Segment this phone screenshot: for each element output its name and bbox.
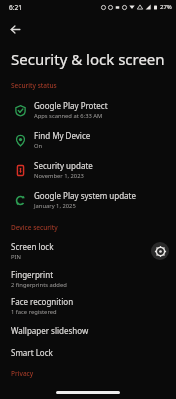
button[interactable]: Security update xyxy=(0,155,176,185)
staticText: 1 face registered xyxy=(11,308,57,316)
staticText: Find My Device xyxy=(34,130,91,141)
button[interactable]: Wallpaper slideshow xyxy=(0,319,176,341)
staticText: 6:21 xyxy=(9,3,22,12)
staticText: November 1, 2023 xyxy=(34,172,84,180)
staticText: Security status xyxy=(11,81,57,90)
staticText: Fingerprint xyxy=(11,269,54,280)
staticText: Google Play system update xyxy=(34,190,137,201)
staticText: Device security xyxy=(11,223,58,232)
button[interactable]: Fingerprint xyxy=(0,265,176,292)
staticText: Privacy xyxy=(11,369,34,378)
button[interactable]: Find My Device xyxy=(0,125,176,155)
staticText: Face recognition xyxy=(11,296,74,307)
staticText: 2 fingerprints added xyxy=(11,281,67,289)
staticText: On xyxy=(34,142,43,150)
button[interactable]: Screen lock xyxy=(0,236,151,265)
staticText: January 1, 2025 xyxy=(34,202,76,210)
staticText: Wallpaper slideshow xyxy=(11,325,89,336)
button[interactable]: Screen lock settings xyxy=(151,242,169,260)
staticText: PIN xyxy=(11,253,21,261)
staticText: 27% xyxy=(160,3,172,11)
button[interactable]: Smart Lock xyxy=(0,341,176,363)
staticText: Security update xyxy=(34,160,93,171)
staticText: Apps scanned at 6:33 AM xyxy=(34,112,103,120)
staticText: Screen lock xyxy=(11,241,54,252)
button[interactable]: Google Play Protect xyxy=(0,95,176,125)
button[interactable]: Google Play system update xyxy=(0,185,176,215)
button[interactable]: Back xyxy=(4,18,26,40)
staticText: Smart Lock xyxy=(11,347,53,358)
staticText: Google Play Protect xyxy=(34,100,108,111)
staticText: Security & lock screen xyxy=(11,49,165,69)
button[interactable]: Face recognition xyxy=(0,292,176,319)
